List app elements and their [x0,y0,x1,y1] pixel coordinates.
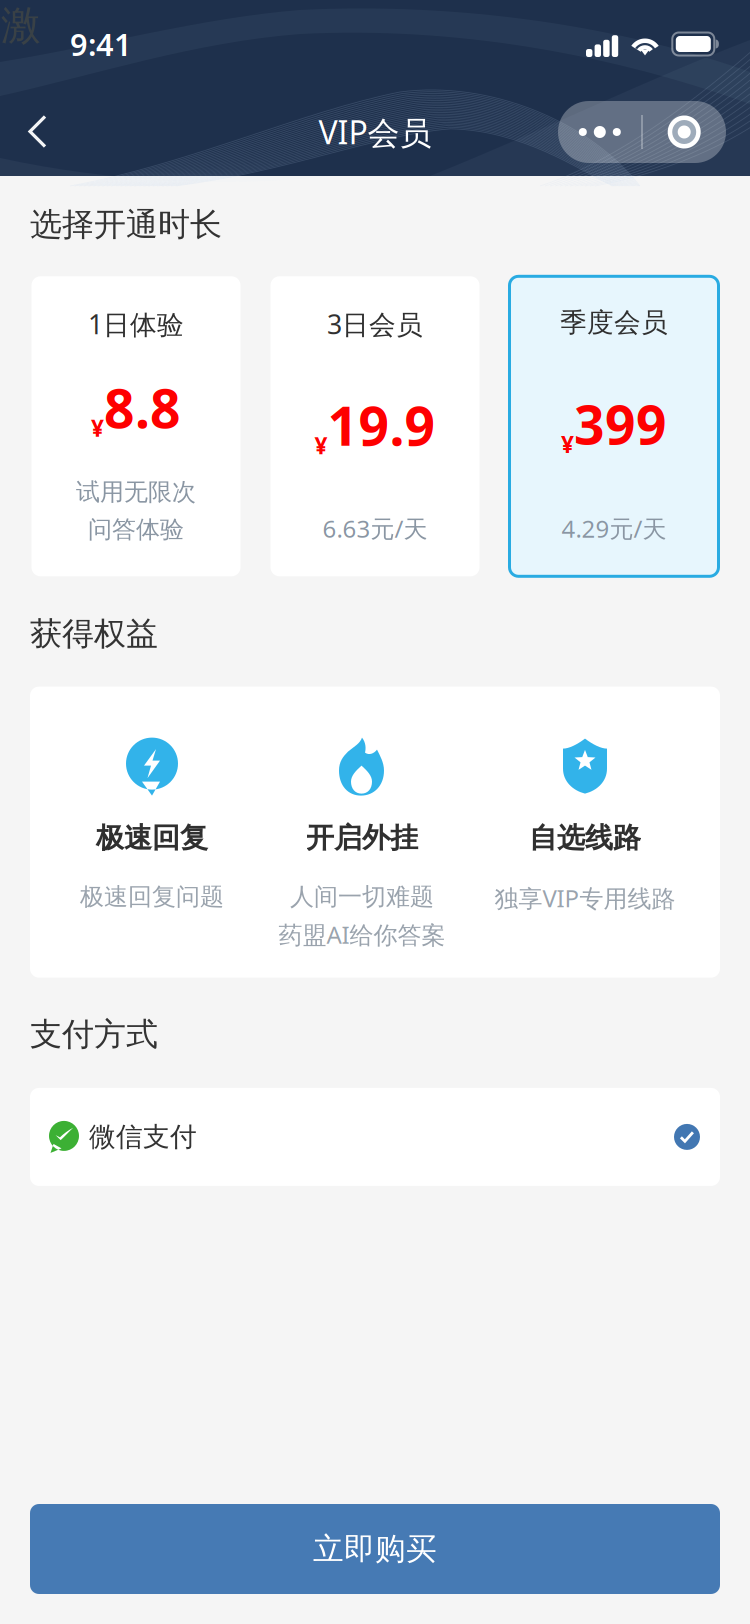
staticText: ¥ [561,429,574,459]
staticText: 问答体验 [88,515,184,544]
staticText: 激 [1,1,41,50]
staticText: 人间一切难题 [290,882,434,911]
staticText: 开启外挂 [306,821,418,855]
staticText: 9:41 [70,24,132,64]
staticText: ¥ [314,430,327,460]
button[interactable]: Back [0,92,76,172]
button[interactable]: 立即购买 [30,1504,720,1594]
button[interactable]: More options [558,101,726,163]
staticText: 独享VIP专用线路 [494,882,675,914]
staticText: 6.63元/天 [322,512,427,544]
staticText: 选择开通时长 [30,205,222,244]
button[interactable]: 1日体验 [31,276,240,576]
staticText: 19.9 [327,390,435,460]
button[interactable]: 季度会员 [509,276,718,576]
staticText: 399 [574,388,667,459]
staticText: 立即购买 [313,1530,437,1568]
staticText: 3日会员 [327,306,423,342]
staticText: 药盟AI给你答案 [278,918,445,950]
staticText: 支付方式 [30,1015,158,1054]
staticText: 极速回复问题 [80,882,224,911]
staticText: ¥ [91,413,104,443]
staticText: 1日体验 [88,306,184,342]
button[interactable]: 3日会员 [270,276,479,576]
staticText: 试用无限次 [76,477,196,507]
staticText: 微信支付 [89,1120,197,1153]
staticText: 季度会员 [560,306,668,339]
staticText: 4.29元/天 [561,512,666,544]
button[interactable]: 微信支付 [30,1088,720,1186]
staticText: 极速回复 [96,821,208,855]
staticText: 获得权益 [30,614,158,654]
staticText: 8.8 [104,372,181,443]
staticText: VIP会员 [318,111,431,153]
staticText: 自选线路 [529,821,641,855]
